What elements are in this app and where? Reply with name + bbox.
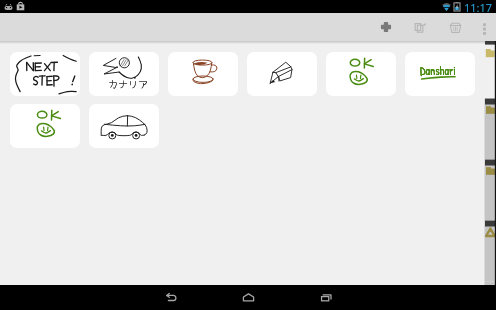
button[interactable]	[168, 52, 238, 96]
button[interactable]	[247, 52, 317, 96]
button[interactable]: Home	[209, 285, 287, 310]
button[interactable]: Delete	[438, 13, 473, 41]
button[interactable]: Back	[131, 285, 209, 310]
staticText: Danshari	[420, 63, 456, 79]
button[interactable]	[326, 52, 396, 96]
button[interactable]	[10, 52, 80, 96]
staticText: Danshari	[420, 63, 456, 79]
button[interactable]	[89, 104, 159, 148]
staticText: Danshari	[420, 63, 456, 79]
staticText: カナリア	[108, 76, 148, 90]
button[interactable]: カナリア	[89, 52, 159, 96]
button[interactable]: Danshari	[405, 52, 475, 96]
staticText: カナリア	[108, 76, 148, 90]
button[interactable]: Add	[368, 13, 403, 41]
button[interactable]: More options	[473, 13, 496, 41]
button[interactable]: Recents	[287, 285, 365, 310]
button[interactable]: Copy	[403, 13, 438, 41]
staticText: 11:17	[464, 0, 493, 13]
button[interactable]	[10, 104, 80, 148]
staticText: カナリア	[108, 76, 148, 90]
